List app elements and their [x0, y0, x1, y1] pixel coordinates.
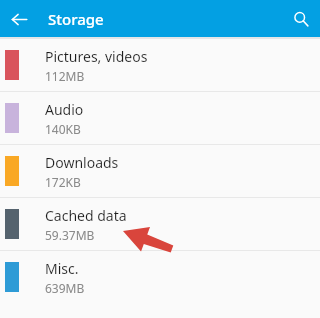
button[interactable]: Downloads: [0, 145, 320, 197]
staticText: Misc.: [45, 259, 79, 278]
staticText: 140KB: [45, 121, 81, 137]
staticText: 172KB: [45, 174, 81, 190]
button[interactable]: Misc.: [0, 251, 320, 303]
button[interactable]: Audio: [0, 92, 320, 144]
button[interactable]: Cached data: [0, 198, 320, 250]
staticText: Audio: [45, 100, 84, 119]
staticText: 112MB: [45, 68, 85, 84]
staticText: 59.37MB: [45, 227, 95, 243]
staticText: 639MB: [45, 280, 85, 296]
staticText: Downloads: [45, 153, 119, 172]
button[interactable]: Search: [289, 7, 313, 31]
button[interactable]: Pictures, videos: [0, 39, 320, 91]
button[interactable]: Back: [7, 7, 31, 31]
staticText: Pictures, videos: [45, 47, 148, 66]
staticText: Storage: [48, 9, 104, 29]
staticText: Cached data: [45, 206, 127, 225]
